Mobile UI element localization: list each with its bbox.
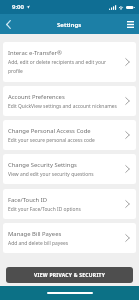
staticText: Edit your Face/Touch ID options <box>8 206 81 213</box>
staticText: VIEW PRIVACY & SECURITY <box>34 272 106 279</box>
button[interactable]: Manage Bill Payees <box>3 223 136 253</box>
staticText: Manage Bill Payees <box>8 230 62 238</box>
staticText: Change Security Settings <box>8 161 77 169</box>
staticText: Edit QuickView settings and account nick… <box>8 103 117 110</box>
staticText: Edit your secure personal access code <box>8 137 95 144</box>
staticText: Settings <box>57 20 82 28</box>
staticText: View and edit your security questions <box>8 171 94 178</box>
staticText: Change Personal Access Code <box>8 127 91 135</box>
staticText: Add and delete bill payees <box>8 240 69 247</box>
staticText: Interac e-Transfer® <box>8 49 62 57</box>
button[interactable]: Account Preferences <box>3 86 136 116</box>
staticText: Add, edit or delete recipients and edit … <box>8 59 121 74</box>
staticText: Face/Touch ID <box>8 196 48 204</box>
button[interactable]: Change Personal Access Code <box>3 120 136 150</box>
button[interactable]: Back <box>0 16 17 33</box>
button[interactable]: Interac e-Transfer® <box>3 42 136 82</box>
button[interactable]: Face/Touch ID <box>3 189 136 219</box>
button[interactable]: VIEW PRIVACY & SECURITY <box>6 267 133 283</box>
staticText: Account Preferences <box>8 93 65 101</box>
staticText: 9:00 <box>12 3 24 11</box>
button[interactable]: Change Security Settings <box>3 154 136 184</box>
button[interactable]: Menu <box>122 16 139 33</box>
